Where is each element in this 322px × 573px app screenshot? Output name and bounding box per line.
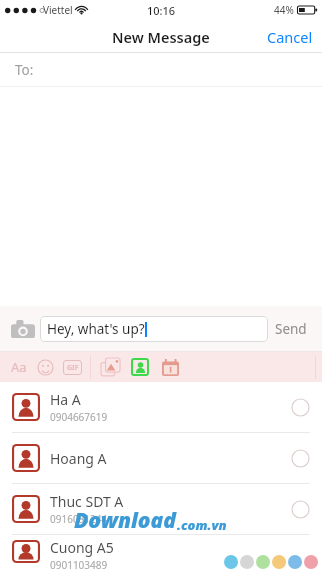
button[interactable]: Camera [8, 314, 38, 344]
button[interactable]: Calendar [155, 352, 185, 382]
button[interactable]: Photos [95, 352, 125, 382]
staticText: 0901103489 [50, 558, 108, 572]
staticText: Send [275, 320, 307, 338]
button[interactable]: GIF [58, 354, 86, 380]
staticText: Thuc SDT A [50, 492, 124, 511]
button[interactable]: Thuc SDT A [0, 484, 322, 535]
staticText: 10:16 [147, 3, 176, 18]
staticText: Cancel [267, 27, 313, 47]
staticText: 44% [274, 3, 294, 17]
staticText: 0904667619 [50, 410, 108, 424]
staticText: Hoang A [50, 449, 107, 468]
button[interactable]: Contact [125, 352, 155, 382]
staticText: To: [15, 61, 34, 79]
staticText: Download [74, 506, 177, 535]
staticText: New Message [112, 27, 210, 47]
button[interactable]: Cuong A5 [0, 535, 322, 573]
staticText: Cuong A5 [50, 538, 114, 557]
button[interactable]: Cancel [258, 21, 322, 53]
staticText: Hey, what's up? [47, 320, 145, 338]
button[interactable]: Hey, what's up? [40, 316, 268, 342]
staticText: Ha A [50, 390, 81, 409]
staticText: Aa [11, 358, 27, 376]
button[interactable]: Text style [5, 354, 32, 380]
staticText: Viettel [43, 3, 73, 17]
button[interactable]: Send [268, 314, 314, 344]
staticText: .com.vn [177, 516, 227, 534]
button[interactable]: Emoji [32, 354, 58, 380]
staticText: 0916081244 [50, 512, 108, 526]
staticText: GIF [67, 363, 79, 373]
button[interactable]: Ha A [0, 382, 322, 433]
button[interactable]: Hoang A [0, 433, 322, 484]
button[interactable]: To: [0, 53, 322, 87]
